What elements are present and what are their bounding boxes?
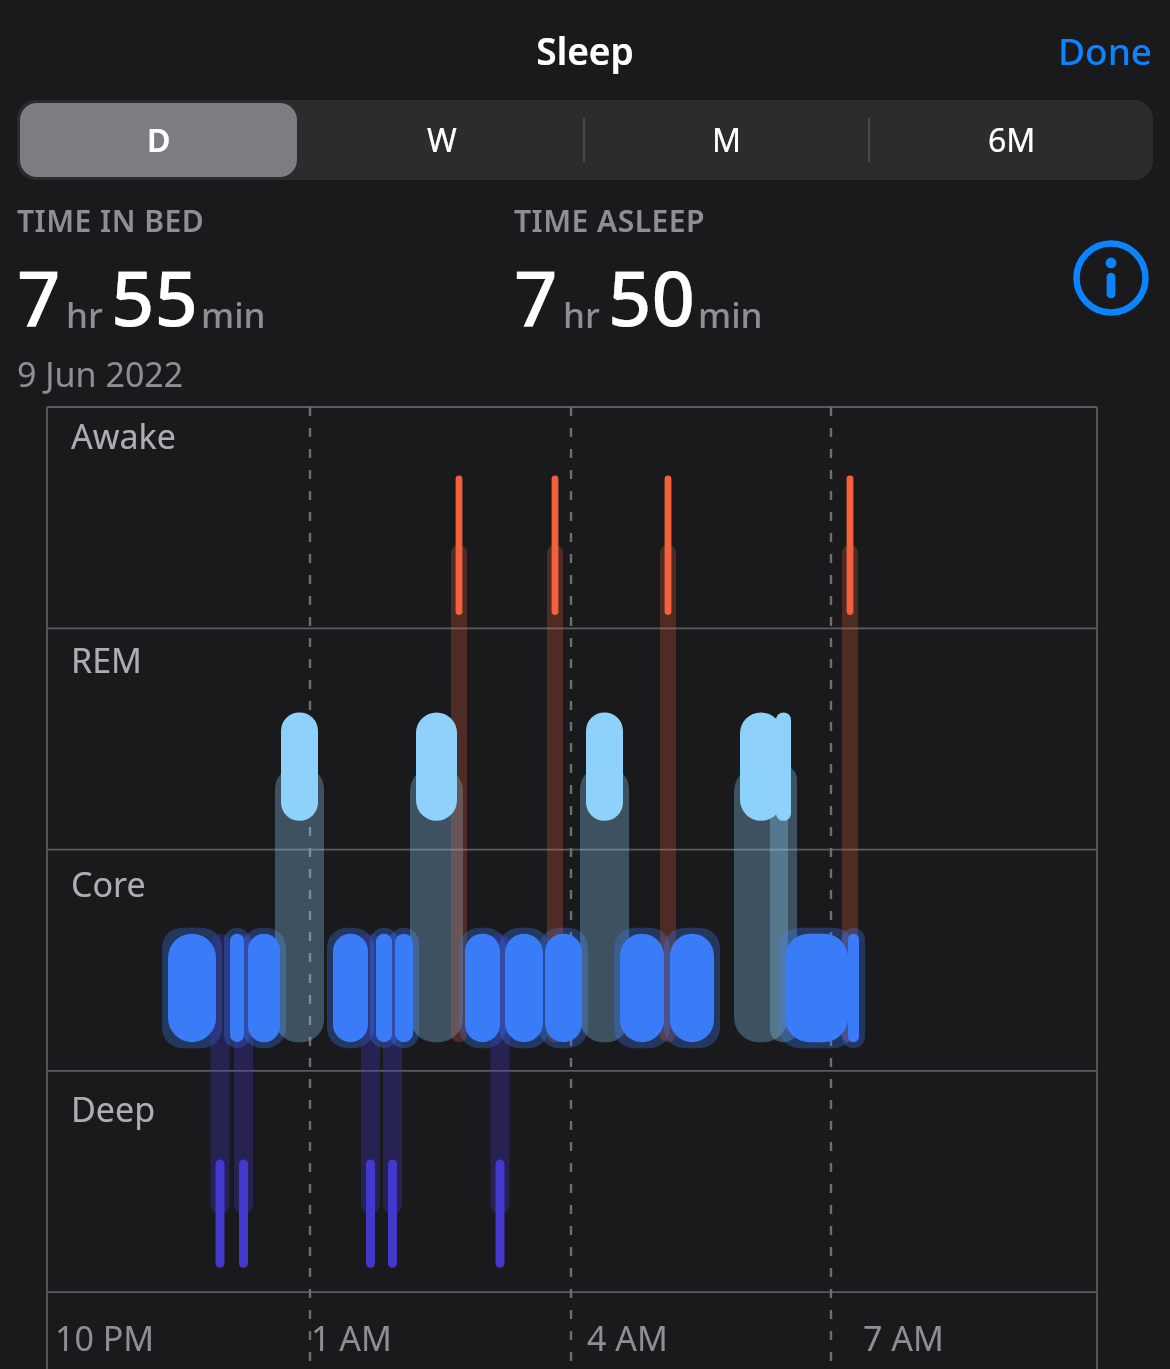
staticText: REM	[71, 637, 142, 683]
staticText: M	[712, 118, 742, 162]
staticText: Awake	[71, 413, 176, 459]
staticText: 7 AM	[863, 1315, 944, 1361]
staticText: 7	[17, 245, 61, 349]
staticText: min	[698, 291, 763, 339]
staticText: 9 Jun 2022	[17, 351, 184, 397]
button[interactable]: M	[588, 103, 865, 177]
button[interactable]: Done	[1041, 15, 1170, 85]
button[interactable]: 6M	[873, 103, 1150, 177]
button[interactable]: W	[303, 103, 580, 177]
staticText: Core	[71, 861, 146, 907]
staticText: 7	[514, 245, 558, 349]
staticText: Sleep	[536, 25, 634, 75]
staticText: 4 AM	[587, 1315, 668, 1361]
staticText: Done	[1058, 25, 1153, 75]
button[interactable]: D	[20, 103, 297, 177]
staticText: W	[427, 118, 457, 162]
staticText: 6M	[988, 118, 1036, 162]
staticText: 10 PM	[55, 1315, 155, 1361]
staticText: TIME ASLEEP	[514, 200, 706, 241]
staticText: 1 AM	[311, 1315, 392, 1361]
staticText: hr	[66, 291, 103, 339]
staticText: hr	[563, 291, 600, 339]
staticText: D	[147, 118, 171, 162]
staticText: 50	[608, 245, 695, 349]
staticText: TIME IN BED	[17, 200, 205, 241]
staticText: Deep	[71, 1086, 156, 1132]
staticText: 55	[111, 245, 198, 349]
staticText: min	[201, 291, 266, 339]
button[interactable]: About sleep stages	[1073, 240, 1149, 316]
